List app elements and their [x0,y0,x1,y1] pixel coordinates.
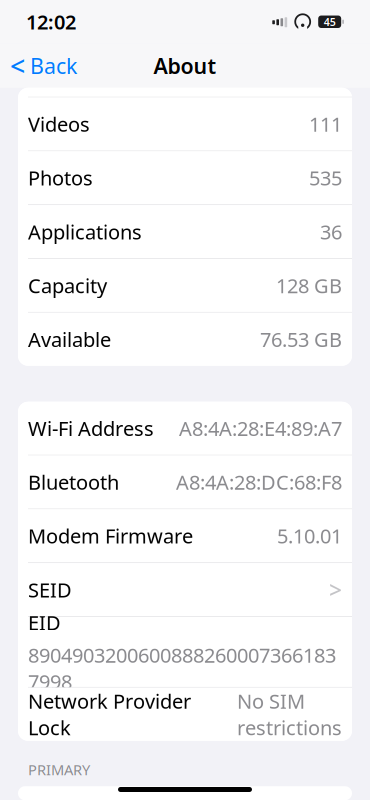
staticText: Capacity [28,272,107,299]
button[interactable]: Applications [18,205,352,258]
staticText: About [153,52,216,80]
button[interactable]: Modem Firmware [18,509,352,562]
staticText: No SIM restrictions [237,688,342,741]
staticText: A8:4A:28:E4:89:A7 [179,415,342,442]
button[interactable]: EID [18,617,352,687]
staticText: Available [28,326,111,353]
staticText: PRIMARY [28,760,90,779]
button[interactable]: Bluetooth [18,456,352,509]
staticText: Modem Firmware [28,523,193,549]
staticText: SEID [28,576,72,603]
staticText: 535 [309,165,342,191]
staticText: 45 [324,15,336,29]
staticText: < [10,48,25,83]
button[interactable]: Wi-Fi Address [18,402,352,455]
button[interactable]: Photos [18,151,352,204]
staticText: 5.10.01 [277,523,342,549]
staticText: 76.53 GB [260,326,342,353]
staticText: > [329,575,342,605]
staticText: Photos [28,165,93,191]
staticText: Back [30,52,77,80]
staticText: Videos [28,111,90,137]
button[interactable]: Network Provider Lock [18,688,352,741]
button[interactable]: Capacity [18,259,352,312]
staticText: A8:4A:28:DC:68:F8 [176,469,342,495]
staticText: Wi-Fi Address [28,415,154,442]
button[interactable]: < [0,44,87,88]
staticText: Bluetooth [28,469,119,495]
button[interactable]: Videos [18,98,352,151]
staticText: EID [28,609,61,636]
button[interactable]: Available [18,313,352,366]
staticText: 36 [320,218,342,245]
staticText: 111 [309,111,342,137]
staticText: 128 GB [276,272,342,299]
staticText: Network Provider Lock [28,688,191,741]
staticText: 12:02 [26,8,76,35]
staticText: 89049032006008882600073661837998 [28,642,336,695]
button[interactable]: SEID [18,563,352,616]
staticText: Applications [28,218,142,245]
